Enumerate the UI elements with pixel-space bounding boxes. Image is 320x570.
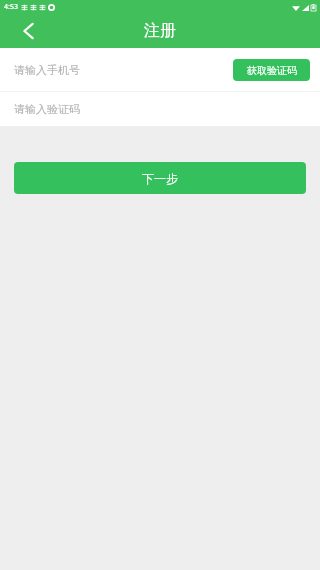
staticText: 4:53 xyxy=(4,2,18,12)
staticText: 获取验证码 xyxy=(247,64,297,77)
staticText: 请输入验证码 xyxy=(14,102,80,116)
button[interactable]: Back xyxy=(0,14,56,48)
button[interactable]: 请输入验证码 xyxy=(0,92,320,126)
staticText: 下一步 xyxy=(142,171,178,186)
button[interactable]: 请输入手机号 xyxy=(0,48,220,91)
button[interactable]: 下一步 xyxy=(14,162,306,194)
staticText: 请输入手机号 xyxy=(14,63,80,77)
button[interactable]: 获取验证码 xyxy=(233,59,310,81)
staticText: 注册 xyxy=(144,21,176,41)
